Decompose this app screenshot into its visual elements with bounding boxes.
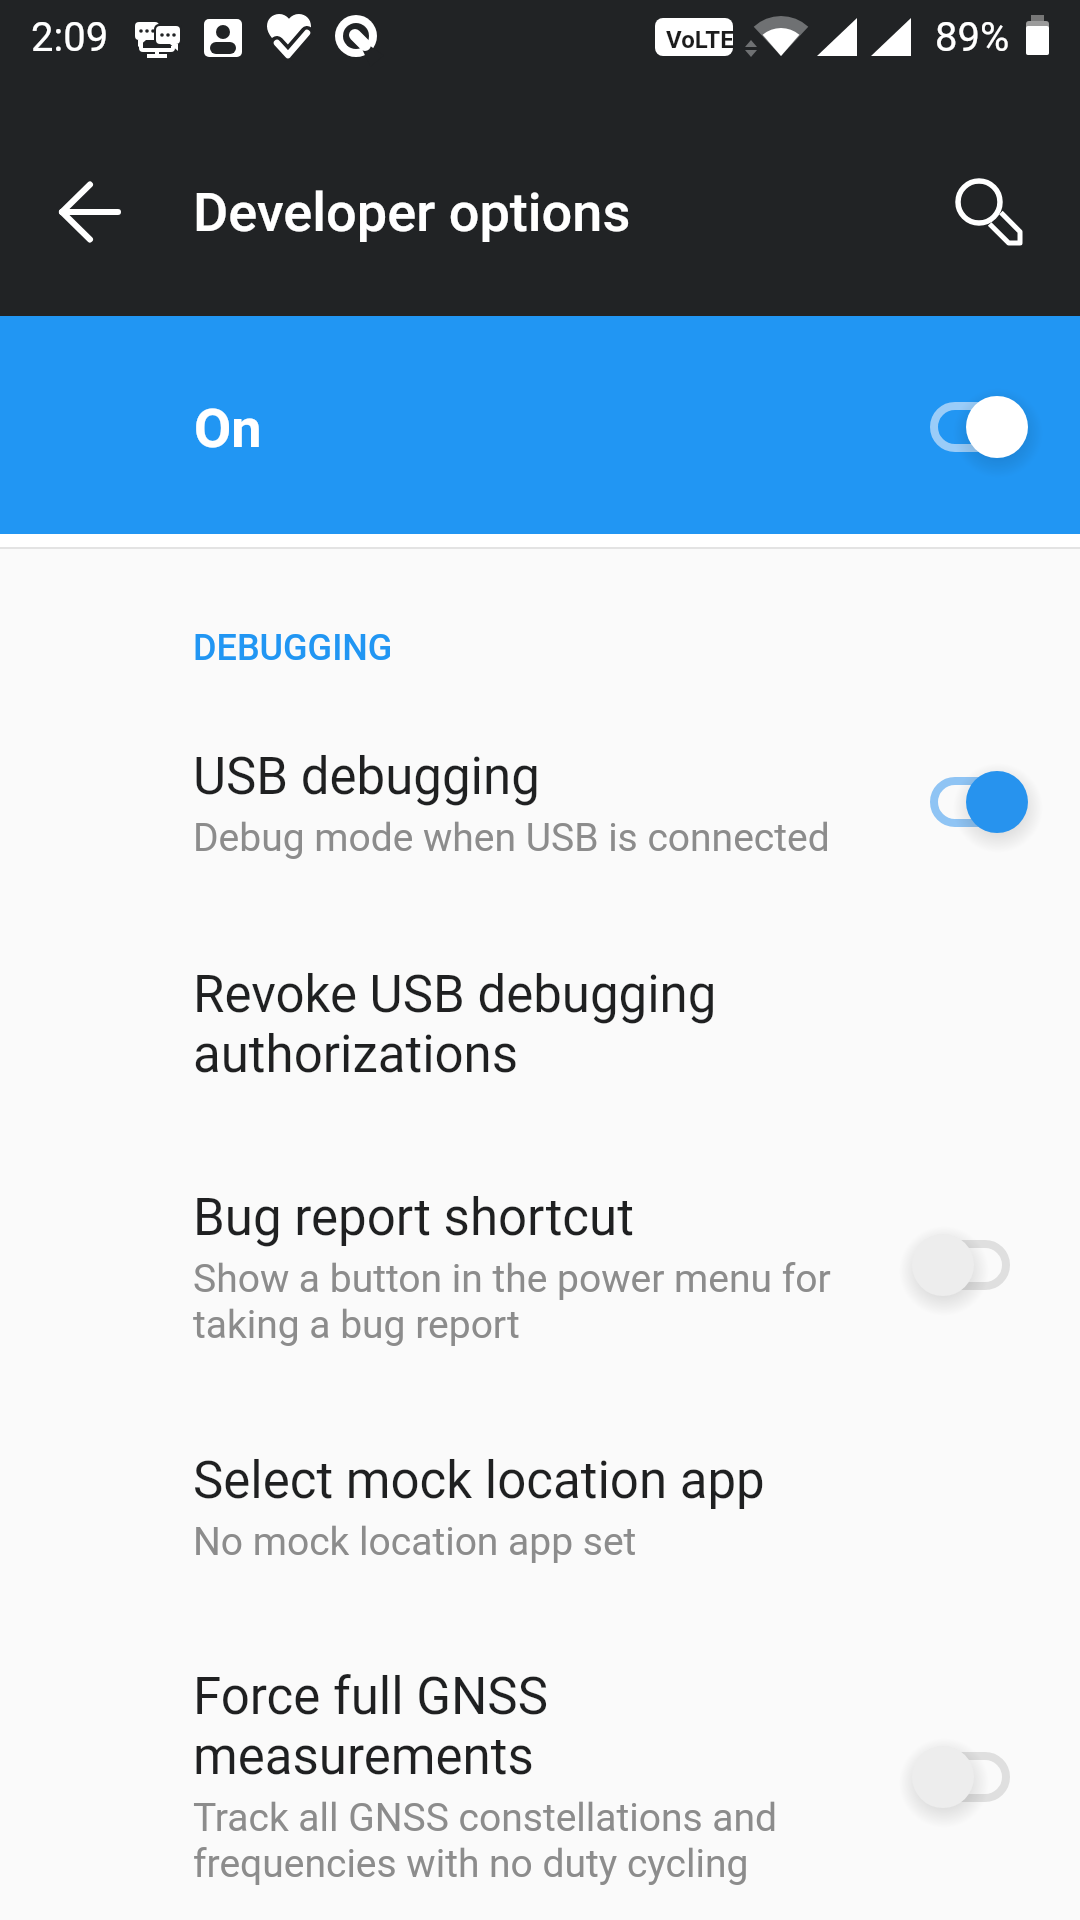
button[interactable] — [931, 154, 1027, 250]
button[interactable] — [42, 164, 138, 260]
button[interactable] — [0, 1155, 1080, 1390]
staticText: Bug report shortcut — [193, 1188, 634, 1248]
staticText: VoLTE — [666, 26, 734, 54]
button[interactable] — [0, 1635, 1080, 1920]
button[interactable] — [0, 690, 1080, 890]
staticText: USB debugging — [193, 747, 540, 807]
button[interactable] — [0, 935, 1080, 1115]
staticText: DEBUGGING — [193, 627, 393, 669]
staticText: Force full GNSS measurements — [193, 1667, 548, 1787]
staticText: Show a button in the power menu for taki… — [193, 1256, 831, 1348]
staticText: On — [194, 397, 262, 460]
staticText: Revoke USB debugging authorizations — [193, 965, 717, 1085]
staticText: Track all GNSS constellations and freque… — [193, 1795, 778, 1887]
staticText: Select mock location app — [193, 1451, 765, 1511]
staticText: Debug mode when USB is connected — [193, 815, 830, 861]
button[interactable] — [0, 316, 1080, 534]
staticText: No mock location app set — [193, 1519, 637, 1565]
button[interactable] — [0, 1420, 1080, 1610]
staticText: 89% — [935, 14, 1010, 61]
staticText: 2:09 — [31, 14, 109, 61]
staticText: Developer options — [193, 181, 631, 244]
